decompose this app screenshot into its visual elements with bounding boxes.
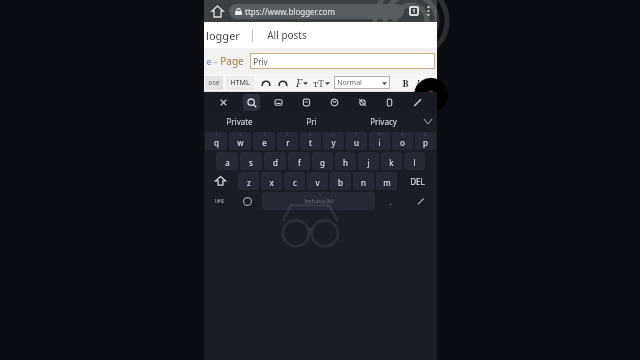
staticText: ttps://www.blogger.com <box>245 6 335 17</box>
button[interactable]: 0 <box>415 132 436 150</box>
staticText: c <box>293 177 297 188</box>
button[interactable]: Normal <box>334 76 390 89</box>
button[interactable]: Symbols <box>204 192 234 210</box>
button[interactable]: Settings <box>354 94 371 111</box>
staticText: 7 <box>355 132 358 137</box>
staticText: Priv <box>253 56 268 67</box>
staticText: m <box>383 177 391 188</box>
staticText: g <box>320 157 325 168</box>
button[interactable]: d <box>264 152 286 170</box>
button[interactable]: Pri <box>275 112 347 131</box>
button[interactable]: k <box>381 152 402 170</box>
button[interactable]: m <box>376 172 397 190</box>
staticText: w <box>237 137 244 148</box>
button[interactable]: Home <box>208 2 226 20</box>
button[interactable]: All posts <box>267 28 307 42</box>
button[interactable]: GIF <box>298 94 315 111</box>
button[interactable]: 7 <box>346 132 367 150</box>
staticText: 0 <box>424 132 427 137</box>
staticText: n <box>361 177 366 188</box>
button[interactable]: Shift <box>205 172 236 190</box>
button[interactable]: b <box>330 172 351 190</box>
button[interactable]: 4 <box>277 132 298 150</box>
button[interactable]: Enter <box>403 192 437 210</box>
button[interactable]: Close <box>215 94 232 111</box>
button[interactable]: Period <box>377 192 403 210</box>
button[interactable]: z <box>238 172 259 190</box>
button[interactable]: Bold <box>402 77 409 89</box>
staticText: z <box>247 177 251 188</box>
staticText: x <box>269 177 274 188</box>
staticText: DEL <box>410 176 425 187</box>
button[interactable]: g <box>312 152 333 170</box>
staticText: e <box>206 55 212 67</box>
button[interactable]: Tabs <box>408 5 420 17</box>
button[interactable]: 5 <box>300 132 321 150</box>
staticText: l <box>413 157 416 168</box>
button[interactable]: Stickers <box>270 94 287 111</box>
staticText: logger <box>206 28 240 43</box>
staticText: t <box>309 137 312 148</box>
button[interactable]: Handwriting <box>409 94 426 111</box>
button[interactable]: Emoji <box>234 192 260 210</box>
button[interactable]: HTML <box>226 76 254 90</box>
staticText: h <box>343 157 348 168</box>
staticText: . <box>389 196 392 207</box>
button[interactable]: c <box>284 172 305 190</box>
button[interactable]: 8 <box>369 132 390 150</box>
staticText: 3 <box>263 132 266 137</box>
button[interactable]: x <box>261 172 282 190</box>
button[interactable]: Private <box>204 112 275 131</box>
staticText: 1 <box>412 7 416 15</box>
staticText: j <box>367 157 370 168</box>
staticText: o <box>400 137 405 148</box>
button[interactable]: Search <box>243 94 260 111</box>
staticText: U <box>427 77 434 89</box>
button[interactable]: 6 <box>323 132 344 150</box>
staticText: 4 <box>286 132 289 137</box>
staticText: !#$ <box>215 197 224 205</box>
button[interactable]: Space <box>262 192 375 210</box>
staticText: r <box>286 137 290 148</box>
button[interactable]: l <box>404 152 425 170</box>
staticText: u <box>354 137 359 148</box>
staticText: f <box>298 157 301 168</box>
button[interactable]: Underline <box>427 77 434 89</box>
button[interactable]: Undo <box>260 77 272 89</box>
button[interactable]: a <box>216 152 238 170</box>
button[interactable]: More options <box>423 2 433 20</box>
button[interactable]: s <box>240 152 262 170</box>
button[interactable]: Text size <box>313 77 324 89</box>
button[interactable]: f <box>288 152 310 170</box>
staticText: a <box>225 157 230 168</box>
button[interactable]: ttps://www.blogger.com <box>229 4 404 19</box>
button[interactable]: 2 <box>229 132 251 150</box>
staticText: 2 <box>239 132 242 137</box>
staticText: HTML <box>230 78 250 88</box>
button[interactable]: ose <box>205 76 223 90</box>
button[interactable]: 1 <box>205 132 227 150</box>
button[interactable]: Delete <box>399 172 436 190</box>
button[interactable]: 3 <box>253 132 275 150</box>
staticText: e <box>262 137 267 148</box>
button[interactable]: Emoji <box>326 94 343 111</box>
button[interactable]: Clipboard <box>381 94 398 111</box>
staticText: y <box>331 137 336 148</box>
button[interactable]: Priv <box>250 53 435 69</box>
staticText: q <box>214 137 219 148</box>
button[interactable]: Redo <box>277 77 289 89</box>
button[interactable]: v <box>307 172 328 190</box>
staticText: 8 <box>378 132 381 137</box>
button[interactable]: Privacy <box>347 112 419 131</box>
staticText: тT <box>313 77 324 89</box>
button[interactable]: Font <box>296 76 302 90</box>
staticText: 9 <box>401 132 404 137</box>
staticText: Pri <box>306 116 317 127</box>
button[interactable]: 9 <box>392 132 413 150</box>
button[interactable]: j <box>358 152 379 170</box>
button[interactable]: Italic <box>416 77 420 89</box>
button[interactable]: More suggestions <box>419 112 437 131</box>
staticText: v <box>315 177 320 188</box>
button[interactable]: h <box>335 152 356 170</box>
button[interactable]: n <box>353 172 374 190</box>
